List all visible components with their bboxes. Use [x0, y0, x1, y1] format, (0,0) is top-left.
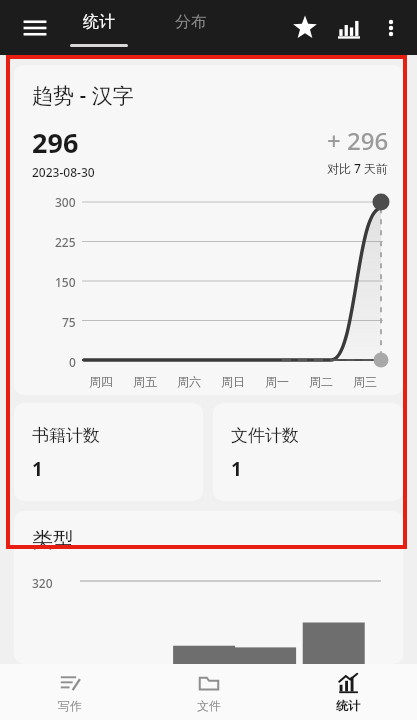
button[interactable]: Menu	[14, 7, 56, 49]
staticText: + 296	[327, 124, 389, 157]
staticText: 周二	[309, 374, 333, 389]
staticText: 75	[62, 314, 76, 330]
staticText: 文件	[197, 698, 221, 713]
staticText: 周一	[265, 374, 289, 389]
staticText: 周五	[133, 374, 157, 389]
staticText: 文件计数	[231, 425, 299, 446]
button[interactable]: 统计	[278, 664, 417, 720]
staticText: 分布	[175, 12, 207, 32]
staticText: 统计	[83, 12, 115, 32]
staticText: 300	[55, 194, 76, 210]
button[interactable]: 写作	[0, 664, 139, 720]
staticText: 0	[69, 354, 76, 370]
staticText: 周四	[89, 374, 113, 389]
button[interactable]: 书籍计数	[14, 403, 203, 501]
button[interactable]: 趋势 - 汉字	[14, 65, 403, 395]
staticText: 周日	[221, 374, 245, 389]
staticText: 类型	[32, 527, 74, 553]
staticText: 1	[231, 456, 242, 482]
staticText: 320	[32, 575, 53, 591]
staticText: 周三	[353, 374, 377, 389]
staticText: 296	[32, 124, 79, 161]
button[interactable]: 文件计数	[213, 403, 403, 501]
button[interactable]: 文件	[139, 664, 278, 720]
staticText: 2023-08-30	[32, 164, 95, 180]
staticText: 1	[32, 456, 43, 482]
button[interactable]: 分布	[160, 0, 222, 55]
staticText: 趋势 - 汉字	[32, 81, 134, 110]
button[interactable]: Charts	[327, 6, 371, 50]
staticText: 150	[55, 274, 76, 290]
staticText: 225	[55, 234, 76, 250]
staticText: 周六	[177, 374, 201, 389]
staticText: 对比 7 天前	[327, 160, 389, 176]
button[interactable]: 类型	[14, 511, 403, 664]
staticText: 统计	[336, 698, 360, 713]
button[interactable]: 统计	[68, 0, 130, 55]
staticText: 书籍计数	[32, 425, 100, 446]
button[interactable]: Favorite	[283, 6, 327, 50]
staticText: 写作	[58, 698, 82, 713]
button[interactable]: More options	[371, 8, 411, 48]
